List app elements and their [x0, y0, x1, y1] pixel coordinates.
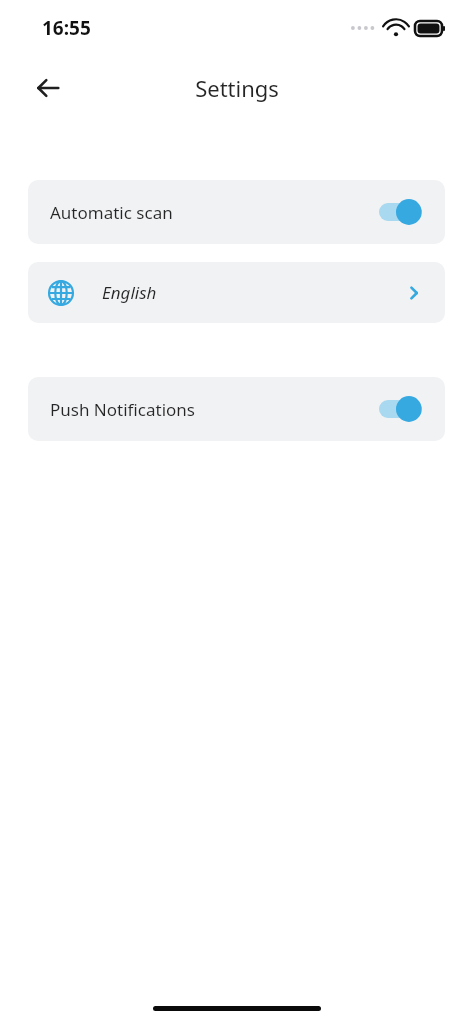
staticText: Push Notifications	[50, 398, 379, 421]
staticText: English	[102, 281, 403, 304]
button[interactable]: Toggle	[379, 395, 423, 423]
staticText: Settings	[195, 73, 279, 103]
button[interactable]: Toggle	[379, 198, 423, 226]
button[interactable]: Automatic scan	[28, 180, 445, 244]
staticText: 16:55	[42, 15, 91, 41]
other: Open language	[403, 283, 423, 303]
button[interactable]: Push Notifications	[28, 377, 445, 441]
other: Language	[48, 280, 74, 306]
staticText: Automatic scan	[50, 201, 379, 224]
button[interactable]: Language	[28, 262, 445, 323]
button[interactable]: Back	[26, 66, 70, 110]
